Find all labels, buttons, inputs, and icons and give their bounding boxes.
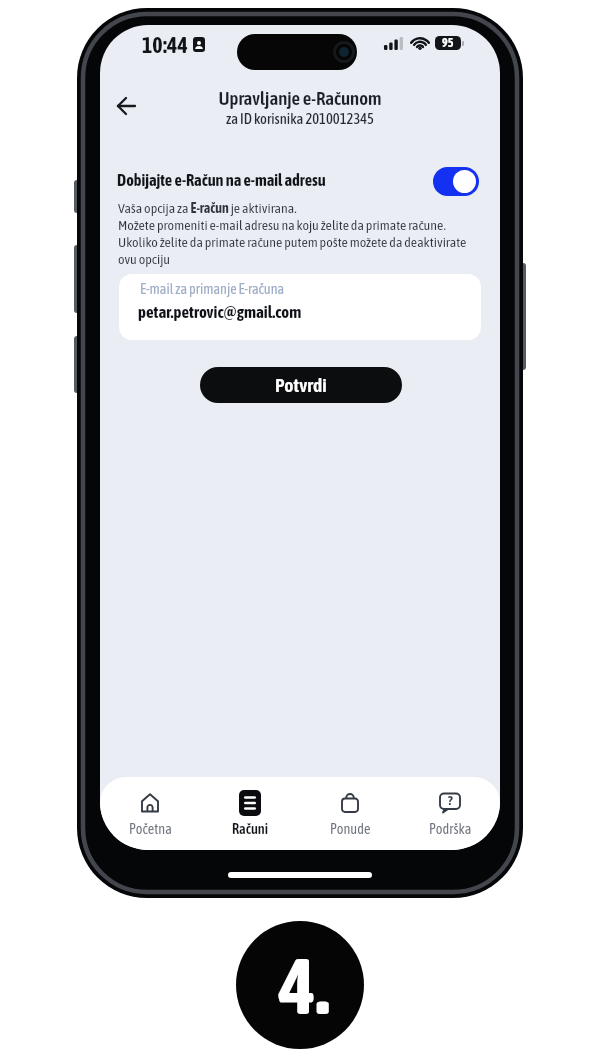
staticText: E-mail za primanje E-računa — [140, 281, 285, 297]
staticText: 4. — [279, 941, 330, 1030]
button[interactable]: Računi — [200, 790, 300, 850]
staticText: Ponude — [330, 821, 371, 837]
staticText: Vaša opcija za E-račun je aktivirana. Mo… — [118, 200, 467, 267]
staticText: ? — [448, 793, 453, 808]
staticText: Dobijajte e-Račun na e-mail adresu — [117, 171, 326, 190]
staticText: Računi — [232, 821, 268, 837]
staticText: za ID korisnika 2010012345 — [100, 110, 500, 127]
button[interactable]: Potvrdi — [200, 367, 402, 403]
button[interactable]: Početna — [100, 790, 200, 850]
button[interactable]: ? — [400, 790, 500, 850]
staticText: petar.petrovic@gmail.com — [138, 302, 302, 321]
staticText: Upravljanje e-Računom — [100, 87, 500, 109]
button[interactable]: E-mail za primanje E-računa — [119, 274, 481, 340]
staticText: Početna — [129, 821, 172, 837]
staticText: Potvrdi — [275, 374, 327, 396]
staticText: 10:44 — [142, 32, 188, 57]
button[interactable]: Ponude — [300, 790, 400, 850]
staticText: Podrška — [429, 821, 472, 837]
button[interactable] — [115, 95, 137, 117]
button[interactable] — [433, 167, 479, 196]
staticText: 95 — [442, 36, 454, 50]
